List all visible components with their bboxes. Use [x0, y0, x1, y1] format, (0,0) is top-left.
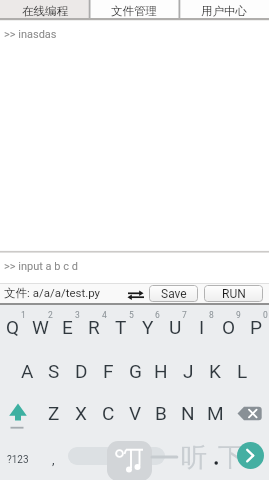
staticText: I	[199, 316, 205, 338]
staticText: 3	[75, 310, 80, 320]
staticText: M	[207, 402, 224, 424]
staticText: S	[48, 360, 60, 382]
button[interactable]: E	[54, 310, 80, 344]
button[interactable]: V	[122, 396, 148, 430]
button[interactable]: K	[202, 354, 228, 388]
button[interactable]: W	[27, 310, 53, 344]
button[interactable]	[126, 287, 146, 303]
staticText: D	[75, 360, 88, 382]
button[interactable]: Y	[135, 310, 161, 344]
button[interactable]: J	[175, 354, 201, 388]
button[interactable]: N	[175, 396, 201, 430]
button[interactable]	[236, 405, 264, 422]
staticText: 用户中心	[201, 4, 247, 18]
button[interactable]: Q	[0, 310, 26, 344]
staticText: G	[129, 360, 142, 382]
button[interactable]: B	[148, 396, 174, 430]
staticText: K	[209, 360, 221, 382]
staticText: Q	[6, 316, 20, 338]
button[interactable]: G	[122, 354, 148, 388]
button[interactable]: F	[95, 354, 121, 388]
button[interactable]: RUN	[204, 285, 263, 302]
staticText: L	[237, 360, 248, 382]
staticText: P	[250, 316, 262, 338]
staticText: X	[75, 402, 87, 424]
button[interactable]: I	[189, 310, 215, 344]
button[interactable]: P	[243, 310, 269, 344]
button[interactable]	[237, 442, 264, 469]
staticText: 5	[129, 310, 134, 320]
staticText: B	[155, 402, 167, 424]
staticText: RUN	[222, 287, 246, 301]
staticText: N	[181, 402, 195, 424]
button[interactable]: C	[95, 396, 121, 430]
button[interactable]: R	[81, 310, 107, 344]
button[interactable]: ?123	[1, 447, 35, 473]
staticText: 文件: a/a/a/test.py	[4, 286, 101, 300]
button[interactable]: ,	[43, 446, 63, 472]
button[interactable]: L	[229, 354, 255, 388]
staticText: ?123	[7, 454, 29, 466]
staticText: 7	[182, 310, 187, 320]
button[interactable]: T	[108, 310, 134, 344]
staticText: >> inasdas	[4, 28, 57, 41]
staticText: C	[102, 402, 115, 424]
button[interactable]: H	[148, 354, 174, 388]
button[interactable]	[4, 396, 34, 432]
staticText: W	[32, 316, 49, 338]
staticText: Z	[48, 402, 60, 424]
staticText: 文件管理	[111, 4, 157, 18]
button[interactable]: 文件管理	[89, 0, 179, 18]
button[interactable]: 用户中心	[179, 0, 269, 18]
staticText: 0	[263, 310, 268, 320]
staticText: >> input a b c d	[4, 260, 78, 273]
staticText: 8	[209, 310, 214, 320]
button[interactable]: M	[202, 396, 228, 430]
staticText: T	[115, 316, 127, 338]
staticText: U	[169, 316, 182, 338]
staticText: ,	[52, 452, 55, 467]
staticText: R	[88, 316, 100, 338]
staticText: 4	[102, 310, 107, 320]
staticText: 1	[21, 310, 26, 320]
staticText: 9	[236, 310, 241, 320]
staticText: 在线编程	[22, 4, 68, 18]
button[interactable]: U	[162, 310, 188, 344]
button[interactable]	[68, 447, 165, 465]
staticText: 6	[155, 310, 160, 320]
button[interactable]: Z	[41, 396, 67, 430]
button[interactable]: S	[41, 354, 67, 388]
staticText: A	[21, 360, 34, 382]
staticText: J	[183, 360, 194, 382]
button[interactable]: A	[14, 354, 40, 388]
staticText: F	[103, 360, 114, 382]
button[interactable]: Save	[149, 285, 198, 302]
button[interactable]: O	[216, 310, 242, 344]
staticText: H	[154, 360, 168, 382]
staticText: V	[129, 402, 142, 424]
staticText: E	[62, 316, 73, 338]
staticText: O	[222, 316, 236, 338]
staticText: 听	[181, 441, 207, 474]
staticText: 下	[218, 441, 244, 474]
staticText: Save	[161, 287, 187, 301]
staticText: Y	[142, 316, 154, 338]
button[interactable]: 在线编程	[0, 0, 89, 18]
staticText: 2	[48, 310, 53, 320]
button[interactable]: D	[68, 354, 94, 388]
button[interactable]: X	[68, 396, 94, 430]
